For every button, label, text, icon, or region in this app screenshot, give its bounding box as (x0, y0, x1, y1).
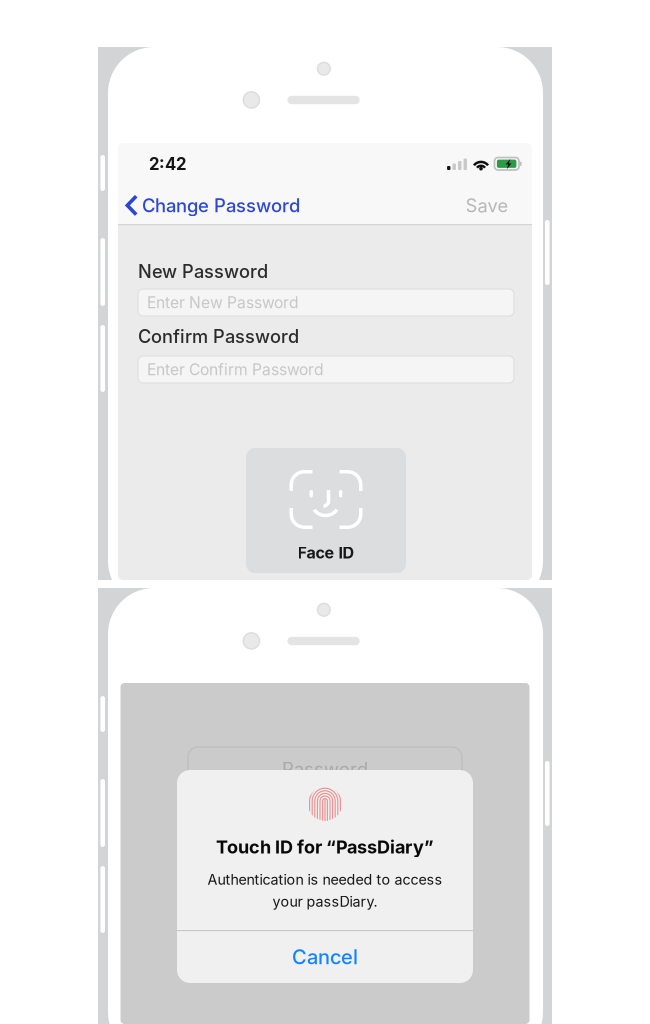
staticText: Save (465, 194, 508, 216)
staticText: your passDiary. (272, 893, 377, 910)
button[interactable]: Cancel (177, 931, 473, 983)
staticText: Face ID (297, 543, 354, 562)
staticText: Enter New Password (147, 293, 299, 312)
staticText: Authentication is needed to access (207, 871, 442, 888)
button[interactable]: Save (453, 186, 521, 225)
button[interactable]: Change Password (118, 186, 309, 225)
button[interactable]: Face ID (246, 448, 406, 573)
staticText: Cancel (292, 945, 358, 969)
staticText: Touch ID for “PassDiary” (216, 836, 434, 858)
staticText: Enter Confirm Password (147, 360, 324, 379)
staticText: 2:42 (149, 154, 186, 174)
staticText: Change Password (142, 194, 300, 217)
staticText: Confirm Password (138, 325, 299, 347)
staticText: New Password (138, 260, 268, 282)
staticText: Password (282, 758, 368, 780)
